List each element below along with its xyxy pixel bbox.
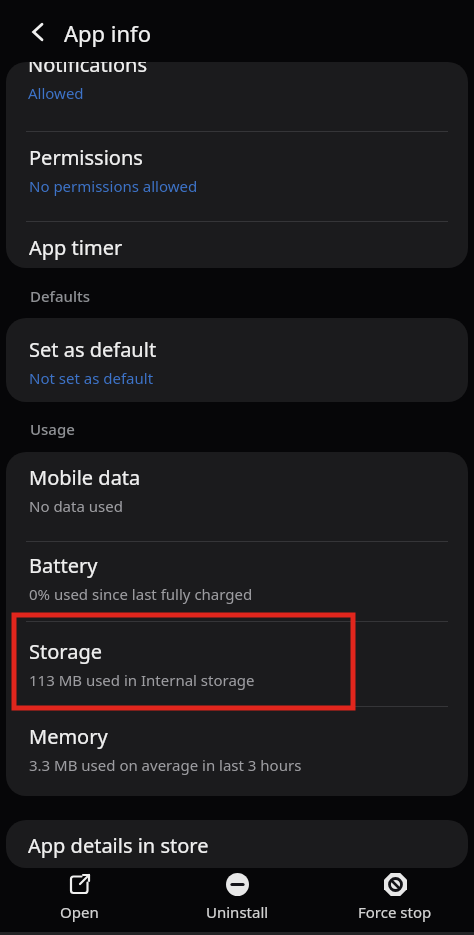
staticText: 3.3 MB used on average in last 3 hours	[29, 755, 302, 775]
button[interactable]: Storage	[6, 622, 468, 706]
staticText: No permissions allowed	[29, 176, 198, 196]
staticText: Permissions	[29, 144, 143, 171]
button[interactable]: Mobile data	[6, 452, 468, 541]
button[interactable]: Notifications	[6, 62, 468, 131]
button[interactable]: Permissions	[6, 132, 468, 222]
button[interactable]: Uninstall	[158, 868, 316, 935]
staticText: Open	[60, 902, 99, 922]
button[interactable]	[24, 17, 54, 47]
staticText: No data used	[29, 496, 123, 516]
staticText: Mobile data	[29, 464, 141, 491]
staticText: App info	[64, 18, 151, 48]
staticText: App timer	[29, 234, 123, 261]
staticText: 113 MB used in Internal storage	[29, 670, 255, 690]
staticText: App details in store	[28, 832, 209, 859]
staticText: Notifications	[28, 62, 147, 78]
button[interactable]: App timer	[6, 222, 468, 268]
staticText: Force stop	[358, 902, 432, 922]
button[interactable]: Memory	[6, 707, 468, 796]
staticText: 0% used since last fully charged	[29, 584, 253, 604]
button[interactable]: Battery	[6, 542, 468, 621]
staticText: Battery	[29, 552, 98, 579]
button[interactable]: Set as default	[6, 318, 468, 402]
staticText: Storage	[29, 638, 102, 665]
button[interactable]: App details in store	[6, 820, 468, 868]
staticText: Allowed	[28, 83, 84, 103]
staticText: Usage	[30, 419, 75, 439]
staticText: Memory	[29, 723, 108, 750]
staticText: Uninstall	[206, 902, 269, 922]
button[interactable]: Force stop	[316, 868, 474, 935]
staticText: Defaults	[30, 286, 91, 306]
button[interactable]: Open	[0, 868, 158, 935]
staticText: Set as default	[29, 336, 157, 363]
staticText: Not set as default	[29, 368, 154, 388]
